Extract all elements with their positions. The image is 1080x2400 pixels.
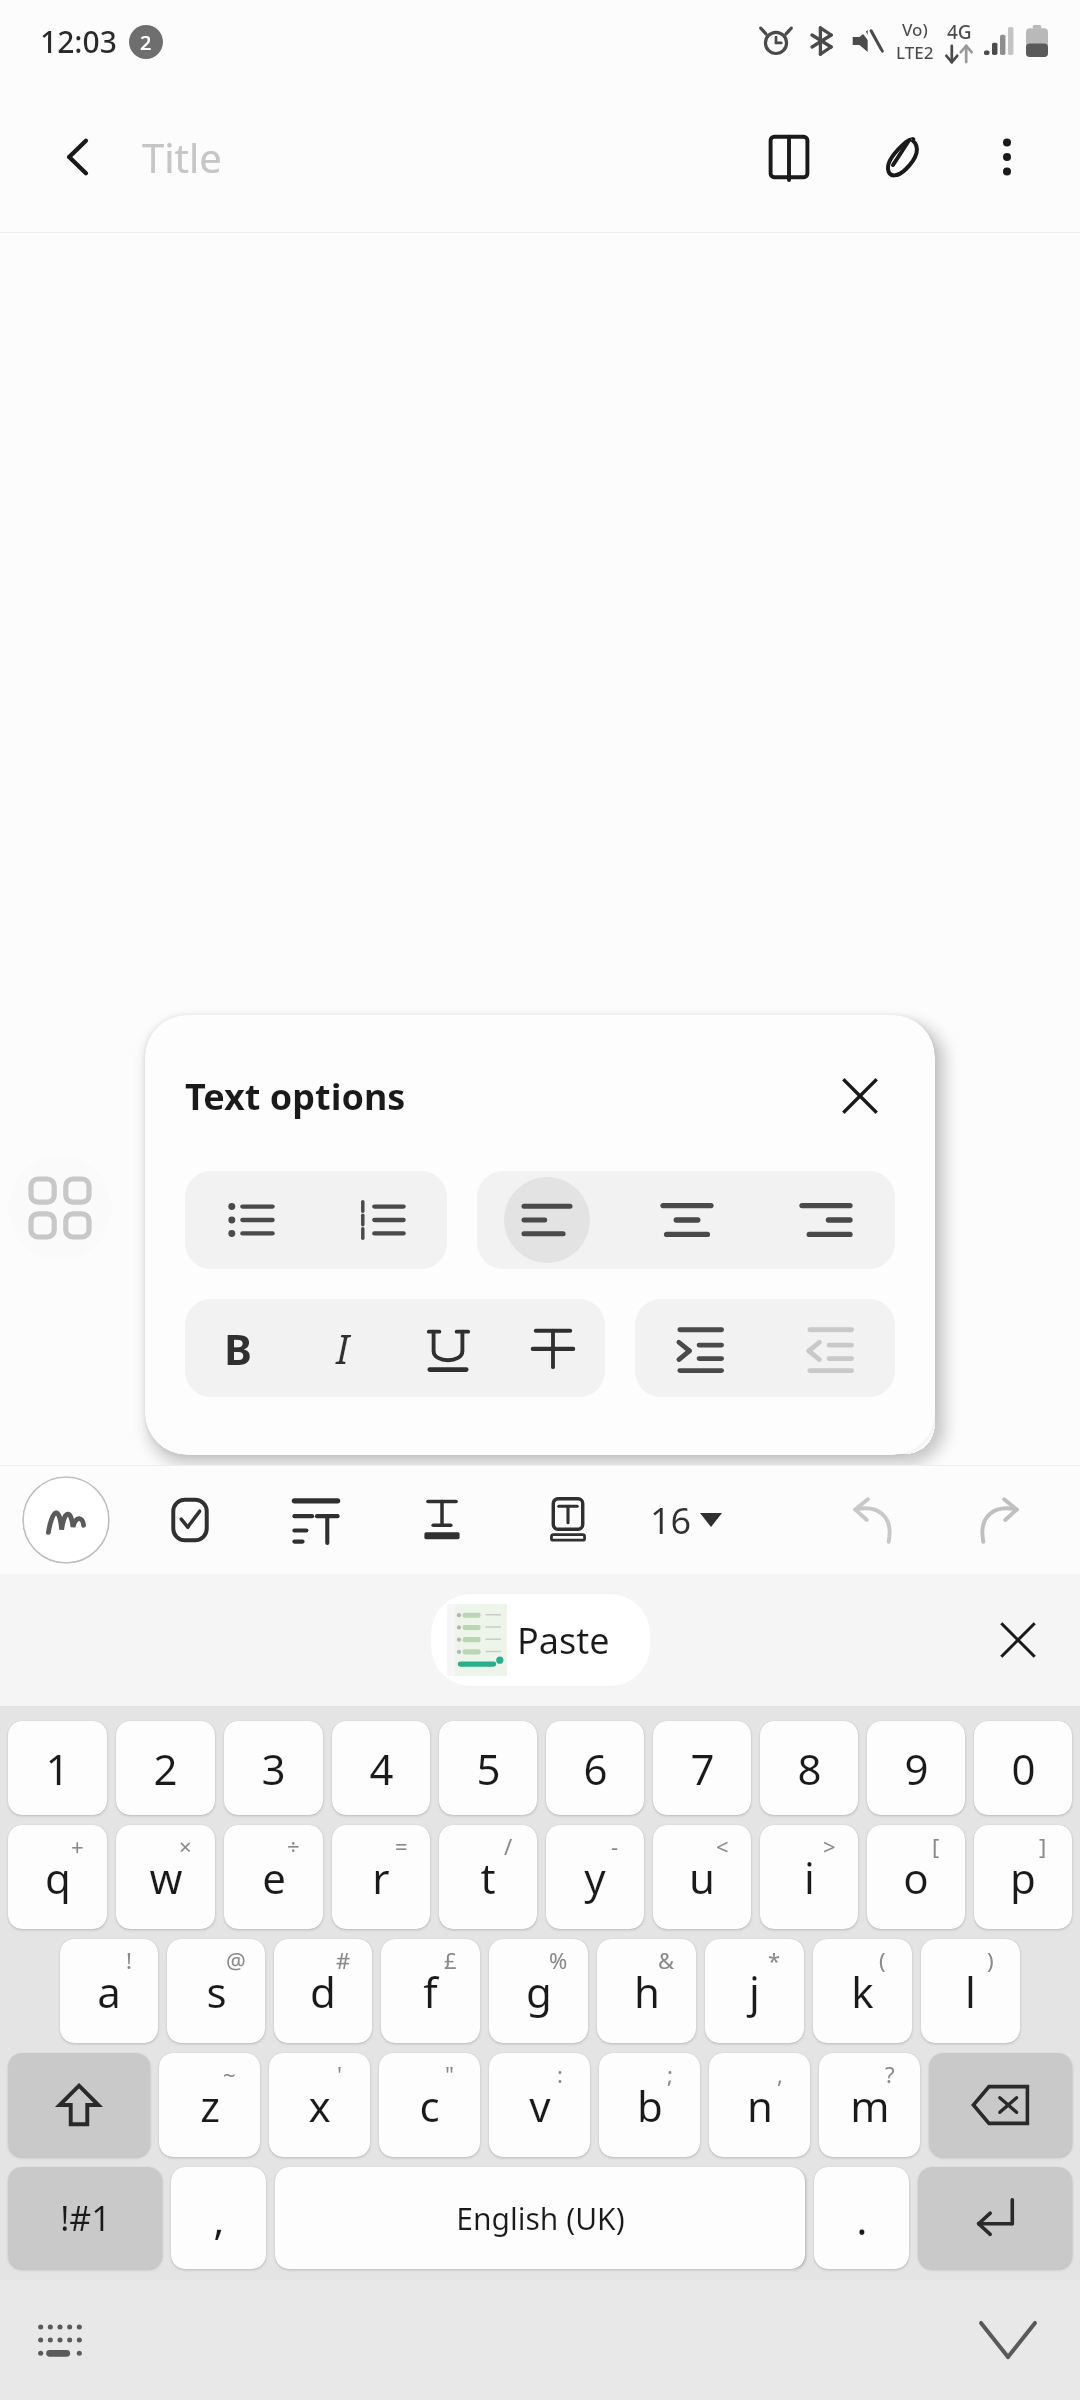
button[interactable]: 9: [867, 1721, 965, 1815]
button[interactable]: Text colour: [398, 1476, 486, 1564]
staticText: n: [747, 2077, 773, 2134]
button[interactable]: 1: [8, 1721, 107, 1815]
button[interactable]: Paragraph style: [272, 1476, 360, 1564]
staticText: 3: [261, 1740, 286, 1797]
button[interactable]: Close clipboard: [978, 1600, 1058, 1680]
button[interactable]: 6: [546, 1721, 644, 1815]
staticText: Paste: [517, 1616, 610, 1665]
staticText: LTE2: [896, 41, 934, 64]
staticText: r: [372, 1849, 390, 1906]
button[interactable]: l: [921, 1939, 1020, 2043]
button[interactable]: .: [814, 2167, 909, 2269]
button[interactable]: Enter: [918, 2167, 1072, 2269]
staticText: English (UK): [456, 2198, 625, 2239]
staticText: ÷: [287, 1831, 300, 1861]
button[interactable]: Reading mode: [746, 114, 832, 200]
button[interactable]: k: [813, 1939, 912, 2043]
button[interactable]: !#1: [8, 2167, 162, 2269]
button[interactable]: f: [381, 1939, 480, 2043]
button[interactable]: Bold: [185, 1299, 290, 1397]
staticText: +: [71, 1831, 84, 1861]
staticText: 8: [797, 1740, 822, 1797]
staticText: *: [768, 1945, 781, 1975]
button[interactable]: d: [274, 1939, 372, 2043]
button[interactable]: n: [709, 2053, 810, 2157]
button[interactable]: English (UK): [275, 2167, 805, 2269]
button[interactable]: Switch keyboard: [20, 2300, 100, 2380]
button[interactable]: Decrease indent: [765, 1299, 895, 1397]
button[interactable]: y: [546, 1825, 644, 1929]
staticText: 6: [583, 1740, 608, 1797]
button[interactable]: Paste: [431, 1594, 650, 1686]
button[interactable]: Align left: [504, 1177, 590, 1263]
button[interactable]: e: [224, 1825, 323, 1929]
button[interactable]: Align center: [617, 1171, 756, 1269]
button[interactable]: 4: [332, 1721, 430, 1815]
button[interactable]: More options: [964, 114, 1050, 200]
staticText: 2: [140, 29, 152, 56]
button[interactable]: ,: [171, 2167, 266, 2269]
button[interactable]: More tools: [8, 1156, 112, 1260]
button[interactable]: o: [867, 1825, 965, 1929]
staticText: @: [226, 1945, 246, 1975]
staticText: 1: [45, 1740, 70, 1797]
button[interactable]: g: [489, 1939, 588, 2043]
staticText: >: [823, 1831, 836, 1861]
button[interactable]: Increase indent: [635, 1299, 765, 1397]
staticText: =: [395, 1831, 408, 1861]
button[interactable]: Delete: [929, 2053, 1072, 2157]
staticText: !#1: [60, 2195, 111, 2241]
button[interactable]: 3: [224, 1721, 323, 1815]
button[interactable]: 16: [642, 1476, 730, 1564]
staticText: Text options: [185, 1072, 406, 1121]
staticText: -: [611, 1831, 619, 1861]
button[interactable]: p: [974, 1825, 1072, 1929]
button[interactable]: Attach: [860, 114, 946, 200]
button[interactable]: Undo: [828, 1476, 916, 1564]
button[interactable]: Strikethrough: [500, 1299, 605, 1397]
button[interactable]: v: [489, 2053, 590, 2157]
staticText: c: [419, 2077, 440, 2134]
button[interactable]: 0: [974, 1721, 1072, 1815]
staticText: w: [149, 1849, 183, 1906]
button[interactable]: 5: [439, 1721, 537, 1815]
button[interactable]: c: [379, 2053, 480, 2157]
button[interactable]: i: [760, 1825, 858, 1929]
button[interactable]: 8: [760, 1721, 858, 1815]
button[interactable]: Highlight: [524, 1476, 612, 1564]
button[interactable]: h: [597, 1939, 696, 2043]
button[interactable]: s: [167, 1939, 265, 2043]
button[interactable]: Checklist: [146, 1476, 234, 1564]
button[interactable]: Handwriting: [22, 1476, 110, 1564]
button[interactable]: 2: [116, 1721, 215, 1815]
button[interactable]: Bulleted list: [185, 1171, 316, 1269]
button[interactable]: j: [705, 1939, 804, 2043]
button[interactable]: b: [599, 2053, 700, 2157]
button[interactable]: Redo: [956, 1476, 1044, 1564]
button[interactable]: Numbered list: [316, 1171, 447, 1269]
button[interactable]: Back: [40, 119, 116, 195]
button[interactable]: q: [8, 1825, 107, 1929]
staticText: <: [716, 1831, 729, 1861]
button[interactable]: x: [269, 2053, 370, 2157]
button[interactable]: u: [653, 1825, 751, 1929]
staticText: a: [97, 1963, 121, 2020]
button[interactable]: t: [439, 1825, 537, 1929]
button[interactable]: Close text options: [825, 1061, 895, 1131]
button[interactable]: Underline: [395, 1299, 500, 1397]
staticText: Title: [142, 130, 222, 184]
button[interactable]: z: [159, 2053, 260, 2157]
button[interactable]: Shift: [8, 2053, 150, 2157]
button[interactable]: 7: [653, 1721, 751, 1815]
button[interactable]: a: [60, 1939, 158, 2043]
button[interactable]: Hide keyboard: [966, 2298, 1050, 2382]
button[interactable]: m: [819, 2053, 920, 2157]
staticText: x: [308, 2077, 331, 2134]
button[interactable]: Align right: [756, 1171, 895, 1269]
button[interactable]: r: [332, 1825, 430, 1929]
button[interactable]: Italic: [290, 1299, 395, 1397]
staticText: m: [850, 2077, 890, 2134]
button[interactable]: w: [116, 1825, 215, 1929]
staticText: Vo): [902, 18, 928, 41]
staticText: ': [337, 2059, 342, 2089]
